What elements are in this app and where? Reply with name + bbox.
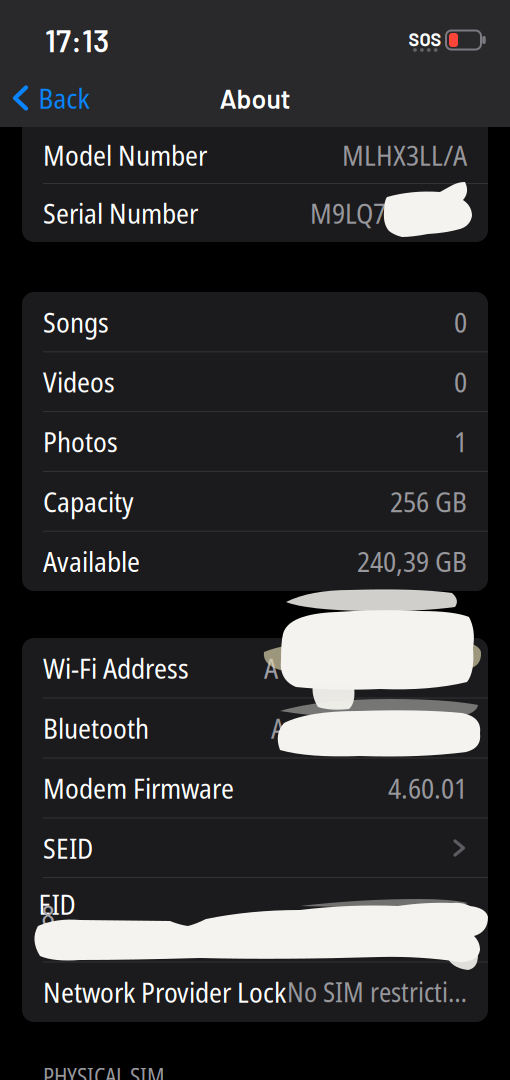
- staticText: 0: [454, 363, 467, 401]
- staticText: Network Provider Lock: [43, 973, 286, 1011]
- staticText: 256 GB: [390, 482, 467, 520]
- staticText: Bluetooth: [43, 709, 149, 747]
- staticText: EID: [38, 885, 75, 923]
- staticText: Photos: [43, 422, 118, 460]
- staticText: No SIM restricti…: [287, 974, 467, 1010]
- staticText: 8: [41, 896, 54, 934]
- staticText: 1: [454, 422, 467, 460]
- staticText: Available: [43, 542, 140, 580]
- staticText: Serial Number: [43, 194, 198, 232]
- staticText: M9LQ7: [310, 194, 386, 232]
- button[interactable]: SEID: [22, 818, 488, 878]
- staticText: Videos: [43, 363, 115, 401]
- staticText: About: [219, 82, 290, 114]
- staticText: Model Number: [43, 136, 207, 174]
- staticText: Modem Firmware: [43, 769, 234, 807]
- staticText: 240,39 GB: [357, 542, 467, 580]
- staticText: PHYSICAL SIM: [43, 1061, 165, 1080]
- staticText: A: [264, 649, 278, 687]
- staticText: Back: [38, 79, 89, 117]
- staticText: Capacity: [43, 482, 134, 520]
- staticText: Songs: [43, 303, 109, 341]
- staticText: 0: [454, 303, 467, 341]
- staticText: SOS: [408, 28, 441, 50]
- staticText: MLHX3LL/A: [342, 136, 467, 174]
- staticText: SEID: [43, 829, 93, 867]
- staticText: Wi-Fi Address: [43, 649, 189, 687]
- button[interactable]: Back: [0, 68, 110, 128]
- staticText: 4.60.01: [388, 769, 467, 807]
- staticText: 17:13: [45, 22, 109, 58]
- staticText: A: [271, 709, 285, 747]
